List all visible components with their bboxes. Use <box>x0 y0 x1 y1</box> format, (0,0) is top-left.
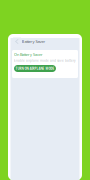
staticText: Enable airplane mode and save battery <box>14 58 76 63</box>
button[interactable]: Back <box>13 37 21 45</box>
staticText: Battery Saver <box>21 39 45 44</box>
staticText: TURN ON AIRPLANE MODE <box>15 66 54 70</box>
staticText: On Battery Saver <box>14 52 43 57</box>
button[interactable]: TURN ON AIRPLANE MODE <box>14 65 56 72</box>
